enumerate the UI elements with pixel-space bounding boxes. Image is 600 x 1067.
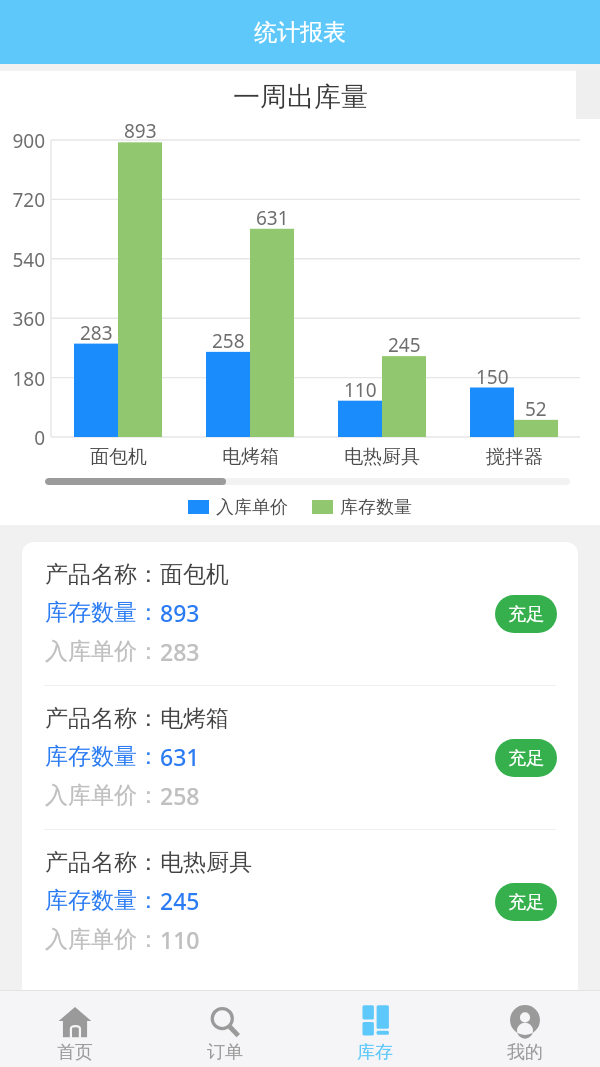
staticText: 统计报表 (254, 18, 346, 47)
staticText: 电烤箱 (160, 704, 229, 733)
button[interactable]: 充足 (495, 595, 557, 633)
staticText: 180 (12, 366, 45, 392)
staticText: 产品名称： (45, 560, 160, 589)
staticText: 入库单价 (216, 496, 288, 519)
staticText: 入库单价： (45, 637, 160, 666)
staticText: 面包机 (160, 560, 229, 589)
button[interactable]: 产品名称： (22, 542, 578, 685)
button[interactable]: 库存 (300, 990, 450, 1067)
staticText: 631 (256, 205, 289, 231)
staticText: 电热厨具 (344, 445, 420, 469)
button[interactable]: 首页 (0, 990, 150, 1067)
staticText: 900 (12, 128, 45, 154)
staticText: 720 (12, 187, 45, 213)
staticText: 52 (525, 396, 547, 422)
staticText: 充足 (508, 891, 544, 914)
button[interactable]: 订单 (150, 990, 300, 1067)
staticText: 首页 (57, 1041, 93, 1064)
staticText: 面包机 (90, 445, 147, 469)
staticText: 258 (212, 328, 245, 354)
button[interactable]: 产品名称： (22, 830, 578, 973)
staticText: 电烤箱 (222, 445, 279, 469)
button[interactable]: 我的 (450, 990, 600, 1067)
staticText: 893 (160, 597, 200, 628)
staticText: 一周出库量 (233, 80, 368, 114)
staticText: 283 (160, 636, 200, 667)
staticText: 150 (476, 364, 509, 390)
staticText: 258 (160, 780, 200, 811)
staticText: 搅拌器 (486, 445, 543, 469)
staticText: 库存数量： (45, 598, 160, 627)
staticText: 产品名称： (45, 704, 160, 733)
button[interactable]: 充足 (495, 739, 557, 777)
staticText: 893 (124, 118, 157, 144)
staticText: 库存数量 (340, 496, 412, 519)
staticText: 库存数量： (45, 742, 160, 771)
staticText: 库存数量： (45, 886, 160, 915)
staticText: 充足 (508, 747, 544, 770)
staticText: 631 (160, 741, 200, 772)
staticText: 283 (80, 320, 113, 346)
staticText: 入库单价： (45, 781, 160, 810)
staticText: 245 (388, 332, 421, 358)
staticText: 360 (12, 306, 45, 332)
staticText: 110 (344, 377, 377, 403)
staticText: 110 (160, 924, 200, 955)
staticText: 我的 (507, 1041, 543, 1064)
staticText: 入库单价： (45, 925, 160, 954)
staticText: 0 (34, 425, 45, 451)
staticText: 245 (160, 885, 200, 916)
button[interactable]: 充足 (495, 883, 557, 921)
staticText: 540 (12, 247, 45, 273)
staticText: 充足 (508, 603, 544, 626)
staticText: 库存 (357, 1041, 393, 1064)
button[interactable]: 产品名称： (22, 686, 578, 829)
staticText: 产品名称： (45, 848, 160, 877)
staticText: 电热厨具 (160, 848, 252, 877)
staticText: 订单 (207, 1041, 243, 1064)
